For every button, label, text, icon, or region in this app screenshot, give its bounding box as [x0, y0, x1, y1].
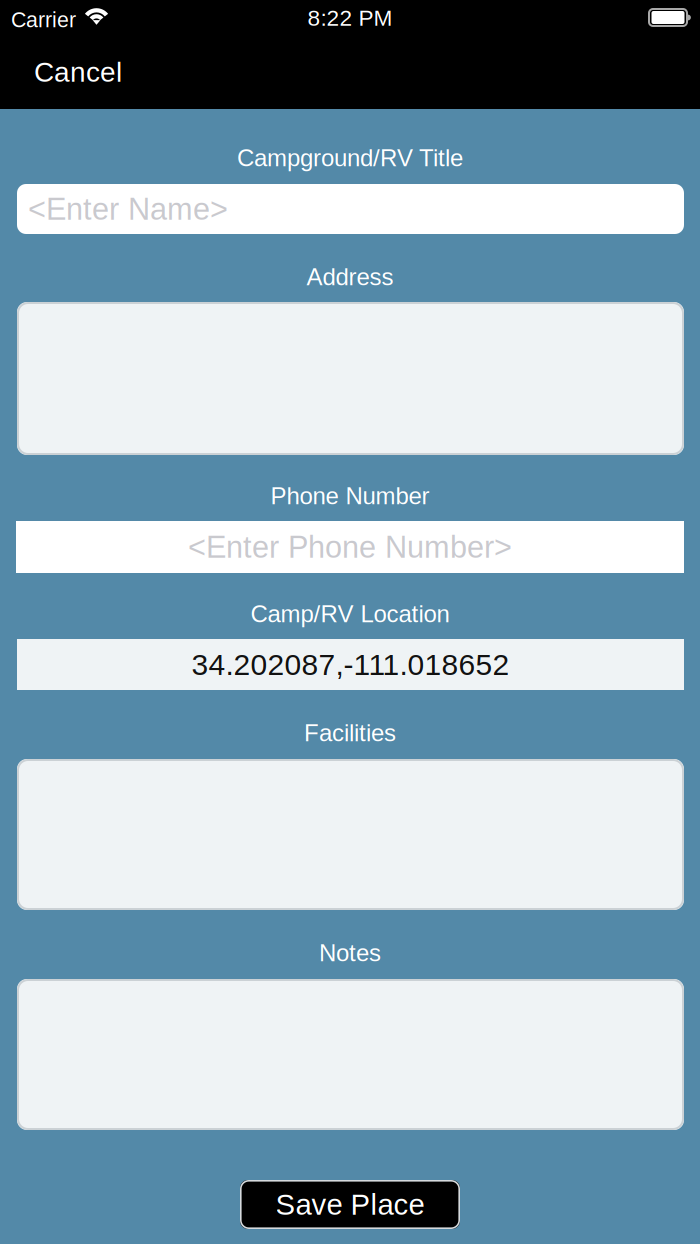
staticText: Facilities	[304, 720, 396, 746]
staticText: 34.202087,-111.018652	[191, 648, 509, 681]
staticText: Cancel	[34, 56, 122, 88]
button[interactable]: <Enter Name>	[17, 184, 684, 234]
staticText: Notes	[319, 940, 381, 966]
button[interactable]: <Enter Phone Number>	[16, 521, 684, 573]
button[interactable]: Cancel	[0, 44, 194, 100]
button[interactable]: Address	[17, 302, 684, 455]
staticText: <Enter Phone Number>	[188, 530, 512, 564]
staticText: <Enter Name>	[28, 192, 228, 226]
staticText: Camp/RV Location	[250, 601, 449, 627]
staticText: Address	[306, 264, 393, 290]
button[interactable]: Notes	[17, 979, 684, 1130]
staticText: Carrier	[11, 8, 76, 32]
staticText: 8:22 PM	[307, 5, 392, 31]
staticText: Campground/RV Title	[237, 145, 463, 171]
button[interactable]: Save Place	[240, 1180, 460, 1229]
button[interactable]: Facilities	[17, 759, 684, 910]
button[interactable]: 34.202087,-111.018652	[17, 639, 684, 690]
staticText: Phone Number	[270, 483, 429, 509]
staticText: Save Place	[275, 1188, 424, 1221]
